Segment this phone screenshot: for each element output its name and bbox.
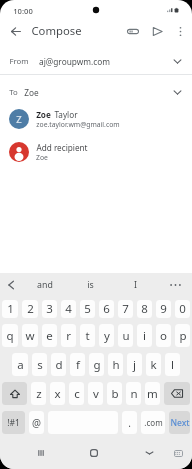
button[interactable]: Home xyxy=(82,441,106,465)
staticText: 2 xyxy=(27,301,34,317)
button[interactable]: m xyxy=(145,382,160,405)
button[interactable]: Back xyxy=(6,21,26,41)
button[interactable]: From xyxy=(0,48,192,74)
staticText: o xyxy=(160,328,167,344)
button[interactable]: Switch keyboard xyxy=(168,443,188,463)
button[interactable]: c xyxy=(69,382,84,405)
staticText: 7 xyxy=(122,301,129,317)
button[interactable]: b xyxy=(107,382,122,405)
staticText: To xyxy=(9,87,18,98)
staticText: b xyxy=(111,386,119,402)
button[interactable]: Next xyxy=(169,411,190,434)
button[interactable]: @ xyxy=(29,411,44,434)
button[interactable]: 5 xyxy=(80,300,95,318)
staticText: . xyxy=(128,416,131,430)
button[interactable]: 7 xyxy=(118,300,133,318)
staticText: i xyxy=(143,328,146,344)
button[interactable]: k xyxy=(146,353,161,376)
staticText: w xyxy=(25,328,35,344)
staticText: q xyxy=(6,328,14,344)
button[interactable]: w xyxy=(22,324,38,347)
staticText: g xyxy=(93,357,101,373)
button[interactable]: s xyxy=(32,353,47,376)
button[interactable]: h xyxy=(108,353,123,376)
button[interactable]: 8 xyxy=(137,300,152,318)
staticText: r xyxy=(66,328,71,344)
staticText: p xyxy=(179,328,187,344)
staticText: .com xyxy=(144,417,163,428)
staticText: k xyxy=(150,357,157,373)
staticText: 9 xyxy=(160,301,167,317)
button[interactable]: . xyxy=(122,411,137,434)
staticText: 0 xyxy=(179,301,186,317)
staticText: f xyxy=(76,357,80,373)
staticText: is xyxy=(87,279,94,291)
button[interactable]: More suggestions xyxy=(158,273,192,297)
button[interactable]: x xyxy=(50,382,65,405)
staticText: j xyxy=(133,357,136,373)
button[interactable]: 6 xyxy=(99,300,114,318)
staticText: From xyxy=(9,56,29,67)
staticText: Zoe xyxy=(36,109,51,120)
button[interactable]: I xyxy=(113,273,158,297)
button[interactable]: Recent apps xyxy=(29,441,53,465)
staticText: zoe.taylor.wm@gmail.com xyxy=(36,120,120,129)
staticText: y xyxy=(104,328,110,344)
button[interactable]: Shift xyxy=(2,382,27,405)
staticText: h xyxy=(112,357,120,373)
staticText: e xyxy=(46,328,53,344)
staticText: 4 xyxy=(65,301,72,317)
button[interactable]: .com xyxy=(141,411,165,434)
button[interactable]: Previous suggestions xyxy=(0,273,22,297)
button[interactable]: q xyxy=(2,324,18,347)
button[interactable]: u xyxy=(118,324,133,347)
button[interactable]: p xyxy=(175,324,190,347)
button[interactable]: r xyxy=(61,324,76,347)
staticText: d xyxy=(55,357,63,373)
staticText: Zoe xyxy=(24,87,39,98)
button[interactable]: e xyxy=(42,324,57,347)
button[interactable]: Send xyxy=(147,21,168,42)
button[interactable]: 0 xyxy=(175,300,190,318)
button[interactable]: 3 xyxy=(42,300,57,318)
button[interactable]: Z xyxy=(0,105,192,133)
button[interactable]: j xyxy=(127,353,142,376)
staticText: u xyxy=(122,328,130,344)
button[interactable]: To xyxy=(0,79,192,105)
button[interactable]: o xyxy=(156,324,171,347)
button[interactable]: 9 xyxy=(156,300,171,318)
staticText: 3 xyxy=(46,301,53,317)
button[interactable]: !#1 xyxy=(2,411,25,434)
button[interactable]: More options xyxy=(170,21,190,41)
button[interactable]: i xyxy=(137,324,152,347)
button[interactable]: t xyxy=(80,324,95,347)
staticText: 6 xyxy=(103,301,110,317)
button[interactable]: d xyxy=(51,353,66,376)
button[interactable]: Hide keyboard xyxy=(137,441,161,465)
button[interactable]: v xyxy=(88,382,103,405)
button[interactable]: 4 xyxy=(61,300,76,318)
button[interactable]: 1 xyxy=(2,300,18,318)
staticText: n xyxy=(130,386,138,402)
button[interactable]: n xyxy=(126,382,141,405)
button[interactable]: a xyxy=(12,353,28,376)
staticText: I xyxy=(134,279,137,291)
button[interactable]: Attach file xyxy=(122,21,143,42)
staticText: 8 xyxy=(141,301,148,317)
button[interactable]: is xyxy=(68,273,113,297)
staticText: s xyxy=(37,357,43,373)
button[interactable]: Backspace xyxy=(164,382,190,405)
staticText: m xyxy=(147,386,158,402)
button[interactable]: Add recipient xyxy=(0,138,192,166)
button[interactable]: l xyxy=(165,353,180,376)
staticText: !#1 xyxy=(7,417,20,429)
staticText: aj@groupwm.com xyxy=(39,56,110,67)
button[interactable]: f xyxy=(70,353,85,376)
button[interactable]: y xyxy=(99,324,114,347)
staticText: a xyxy=(17,357,24,373)
button[interactable]: g xyxy=(89,353,104,376)
button[interactable]: and xyxy=(22,273,68,297)
button[interactable]: z xyxy=(31,382,46,405)
button[interactable]: 2 xyxy=(22,300,38,318)
